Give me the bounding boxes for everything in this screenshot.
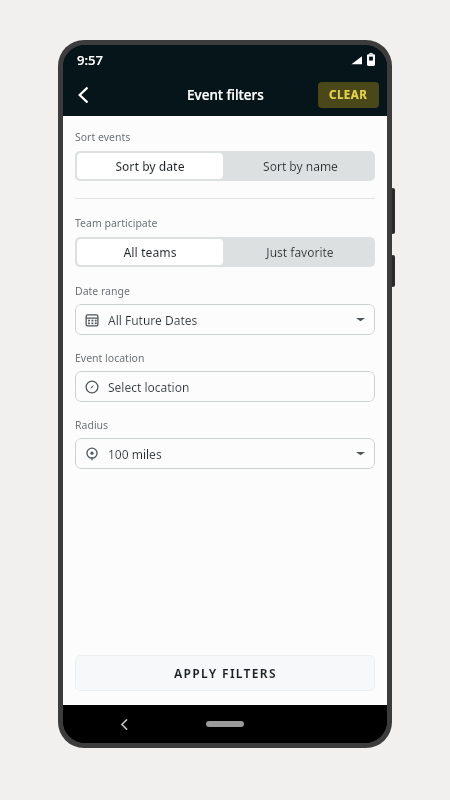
staticText: Team participate — [75, 216, 158, 230]
staticText: CLEAR — [329, 87, 368, 103]
staticText: All teams — [123, 244, 177, 260]
staticText: Event filters — [187, 86, 264, 104]
button[interactable]: All teams — [77, 239, 223, 265]
button[interactable]: All Future Dates — [75, 304, 375, 335]
staticText: Sort by date — [115, 158, 185, 174]
staticText: Event location — [75, 351, 145, 365]
button[interactable]: 100 miles — [75, 438, 375, 469]
staticText: APPLY FILTERS — [174, 665, 277, 681]
button[interactable]: Select location — [75, 371, 375, 402]
staticText: 100 miles — [108, 446, 162, 462]
button[interactable]: Back — [111, 711, 137, 737]
staticText: All Future Dates — [108, 312, 198, 328]
button[interactable]: Sort by date — [77, 153, 223, 179]
button[interactable]: CLEAR — [318, 82, 379, 108]
button[interactable]: Just favorite — [225, 237, 375, 267]
staticText: Select location — [108, 379, 190, 395]
button[interactable]: Back — [63, 74, 105, 116]
staticText: Date range — [75, 284, 130, 298]
button[interactable]: Home — [206, 721, 244, 727]
button[interactable]: APPLY FILTERS — [75, 655, 375, 691]
staticText: Sort events — [75, 130, 131, 144]
staticText: 9:57 — [77, 51, 103, 69]
staticText: Sort by name — [263, 158, 338, 174]
button[interactable]: Sort by name — [225, 151, 375, 181]
staticText: Radius — [75, 418, 109, 432]
staticText: Just favorite — [266, 244, 334, 260]
